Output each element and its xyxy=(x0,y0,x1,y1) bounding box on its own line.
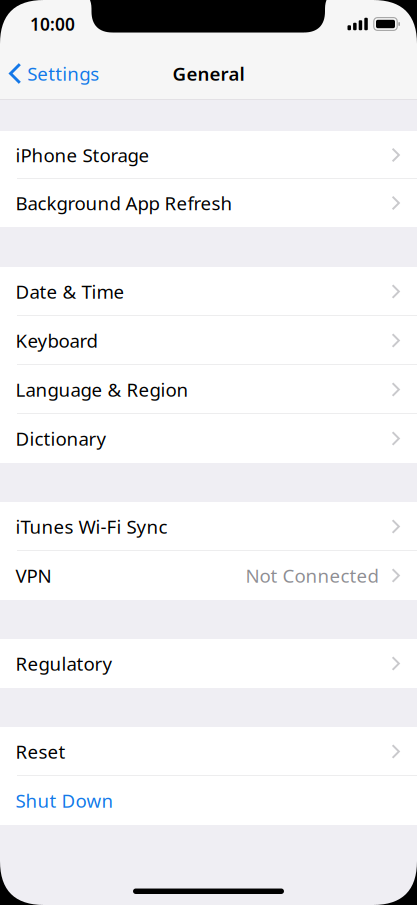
staticText: Not Connected xyxy=(245,563,378,588)
button[interactable]: Settings xyxy=(0,51,109,95)
staticText: Keyboard xyxy=(15,328,97,353)
staticText: Background App Refresh xyxy=(15,191,232,215)
staticText: Dictionary xyxy=(15,426,106,451)
staticText: Reset xyxy=(15,739,65,764)
button[interactable]: Dictionary xyxy=(0,414,417,463)
button[interactable]: Reset xyxy=(0,727,417,776)
staticText: iTunes Wi-Fi Sync xyxy=(15,514,167,539)
staticText: General xyxy=(172,61,244,86)
button[interactable]: Keyboard xyxy=(0,316,417,365)
button[interactable]: Regulatory xyxy=(0,639,417,688)
staticText: Date & Time xyxy=(15,279,124,304)
staticText: Shut Down xyxy=(15,788,113,813)
staticText: iPhone Storage xyxy=(15,143,149,167)
staticText: VPN xyxy=(15,563,51,588)
staticText: Language & Region xyxy=(15,377,188,402)
staticText: 10:00 xyxy=(30,12,75,35)
button[interactable]: Shut Down xyxy=(0,776,417,825)
staticText: Settings xyxy=(27,61,99,86)
button[interactable]: VPN xyxy=(0,551,417,600)
button[interactable]: iTunes Wi-Fi Sync xyxy=(0,502,417,551)
staticText: Regulatory xyxy=(15,651,112,676)
button[interactable]: Date & Time xyxy=(0,267,417,316)
button[interactable]: Background App Refresh xyxy=(0,179,417,227)
button[interactable]: iPhone Storage xyxy=(0,131,417,179)
button[interactable]: Language & Region xyxy=(0,365,417,414)
